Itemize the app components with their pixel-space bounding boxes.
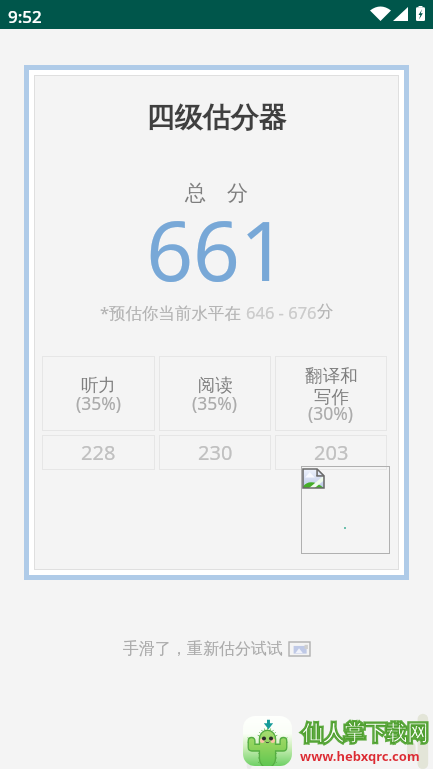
button[interactable]: 阅读: [159, 356, 271, 431]
staticText: 230: [198, 439, 233, 466]
button[interactable]: 听力: [42, 356, 155, 431]
button[interactable]: 228: [42, 435, 155, 470]
staticText: 总 分: [34, 178, 399, 207]
button[interactable]: 203: [275, 435, 387, 470]
staticText: 写作: [314, 386, 349, 408]
staticText: *预估你当前水平在: [100, 301, 246, 324]
staticText: (35%): [76, 391, 122, 415]
button[interactable]: 翻译和: [275, 356, 387, 431]
staticText: 仙人掌下载网: [302, 720, 428, 746]
staticText: www.hebxqrc.com: [300, 747, 420, 765]
staticText: 661: [34, 193, 399, 305]
staticText: 翻译和: [305, 365, 358, 387]
button[interactable]: Share score image: [301, 466, 390, 554]
staticText: 四级估分器: [34, 100, 399, 135]
staticText: (35%): [192, 391, 238, 415]
staticText: 203: [314, 439, 349, 466]
staticText: 646 - 676: [246, 301, 317, 323]
staticText: 分: [317, 301, 334, 322]
button[interactable]: 230: [159, 435, 271, 470]
staticText: 仙人掌下载网: [302, 720, 428, 746]
staticText: 手滑了，重新估分试试: [123, 639, 283, 659]
staticText: 228: [81, 439, 116, 466]
staticText: 阅读: [198, 374, 233, 396]
staticText: 仙人掌下载网: [302, 720, 428, 746]
staticText: (30%): [308, 401, 354, 425]
staticText: 听力: [81, 374, 116, 396]
staticText: 9:52: [8, 5, 42, 28]
button[interactable]: 手滑了，重新估分试试: [0, 639, 433, 659]
